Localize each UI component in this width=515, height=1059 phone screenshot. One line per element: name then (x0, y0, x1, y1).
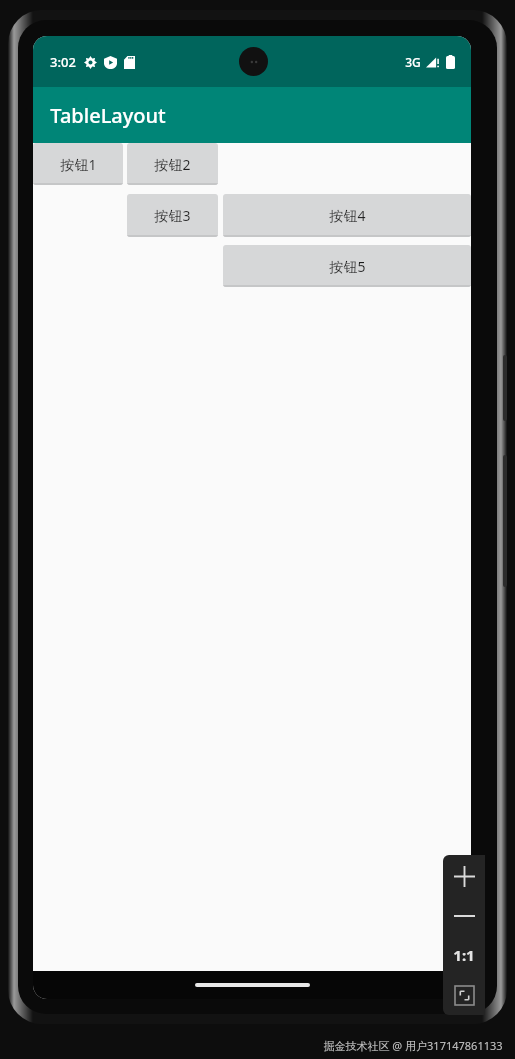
button[interactable]: Zoom in (443, 855, 485, 897)
staticText: 按钮5 (329, 257, 366, 276)
staticText: 3G (405, 54, 421, 70)
button[interactable]: 按钮2 (127, 143, 218, 185)
button[interactable]: 按钮5 (223, 245, 471, 287)
button[interactable]: Zoom out (443, 897, 485, 935)
staticText: 3:02 (50, 53, 76, 71)
staticText: 1:1 (453, 945, 475, 965)
button[interactable]: 1:1 (443, 935, 485, 975)
button[interactable]: 按钮1 (33, 143, 123, 185)
staticText: 掘金技术社区 @ 用户317147861133 (323, 1038, 503, 1053)
button[interactable]: 按钮4 (223, 194, 471, 237)
staticText: 按钮3 (154, 206, 191, 225)
button[interactable]: Fit to screen (443, 975, 485, 1015)
staticText: 按钮2 (154, 155, 191, 174)
staticText: 按钮4 (329, 206, 366, 225)
staticText: 按钮1 (60, 155, 97, 174)
button[interactable]: 按钮3 (127, 194, 218, 237)
staticText: TableLayout (50, 102, 166, 129)
